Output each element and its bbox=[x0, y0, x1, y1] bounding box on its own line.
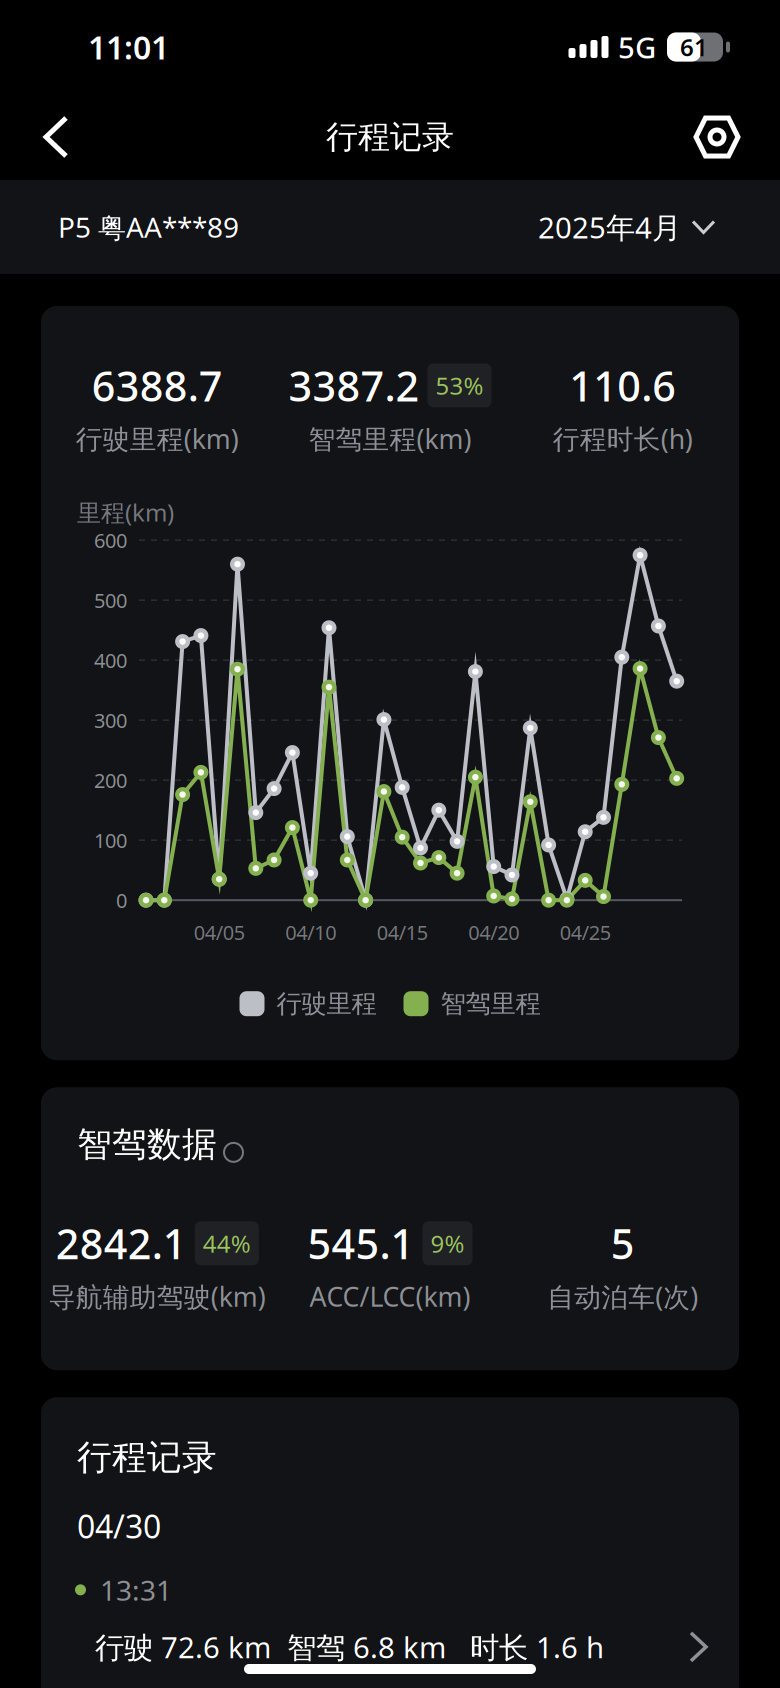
button[interactable]: Back bbox=[21, 94, 91, 180]
staticText: 行驶 72.6 km 智驾 6.8 km 时长 1.6 h bbox=[95, 1627, 604, 1666]
staticText: 行程时长(h) bbox=[553, 421, 693, 456]
staticText: 04/15 bbox=[377, 919, 428, 945]
staticText: 11:01 bbox=[88, 26, 169, 68]
staticText: 智驾里程 bbox=[440, 988, 540, 1019]
staticText: 3387.2 bbox=[288, 358, 419, 413]
staticText: 智驾数据 bbox=[77, 1123, 217, 1166]
staticText: 2842.1 bbox=[56, 1216, 187, 1271]
staticText: 53% bbox=[435, 369, 483, 401]
staticText: 5 bbox=[611, 1216, 635, 1271]
staticText: 04/25 bbox=[560, 919, 611, 945]
staticText: 行驶里程 bbox=[276, 988, 376, 1019]
staticText: 2025年4月 bbox=[538, 207, 681, 246]
staticText: 300 bbox=[94, 707, 127, 733]
staticText: 5G bbox=[618, 27, 656, 66]
staticText: 智驾里程(km) bbox=[308, 421, 471, 456]
button[interactable]: 13:31 bbox=[41, 1547, 739, 1688]
staticText: 44% bbox=[203, 1227, 251, 1259]
staticText: 9% bbox=[430, 1227, 464, 1259]
button[interactable]: Settings bbox=[675, 94, 759, 180]
staticText: 导航辅助驾驶(km) bbox=[49, 1279, 266, 1314]
staticText: 13:31 bbox=[100, 1571, 172, 1608]
staticText: 04/30 bbox=[77, 1505, 161, 1547]
staticText: 200 bbox=[94, 767, 127, 793]
staticText: 里程(km) bbox=[77, 496, 174, 528]
staticText: 行程记录 bbox=[326, 117, 454, 157]
staticText: 行程记录 bbox=[77, 1436, 217, 1479]
staticText: 600 bbox=[94, 527, 127, 553]
staticText: P5 粤AA***89 bbox=[58, 208, 239, 246]
button[interactable]: 2025年4月 bbox=[538, 189, 714, 264]
staticText: 04/20 bbox=[468, 919, 519, 945]
staticText: ACC/LCC(km) bbox=[309, 1279, 470, 1314]
staticText: 04/05 bbox=[194, 919, 245, 945]
staticText: 6388.7 bbox=[92, 358, 223, 413]
staticText: 0 bbox=[116, 887, 127, 913]
staticText: 500 bbox=[94, 587, 127, 613]
staticText: 自动泊车(次) bbox=[547, 1279, 698, 1314]
staticText: 545.1 bbox=[307, 1216, 414, 1271]
staticText: 61 bbox=[680, 31, 708, 63]
staticText: 行驶里程(km) bbox=[76, 421, 239, 456]
staticText: 110.6 bbox=[569, 358, 676, 413]
staticText: 400 bbox=[94, 647, 127, 673]
staticText: 04/10 bbox=[285, 919, 336, 945]
staticText: 100 bbox=[94, 827, 127, 853]
